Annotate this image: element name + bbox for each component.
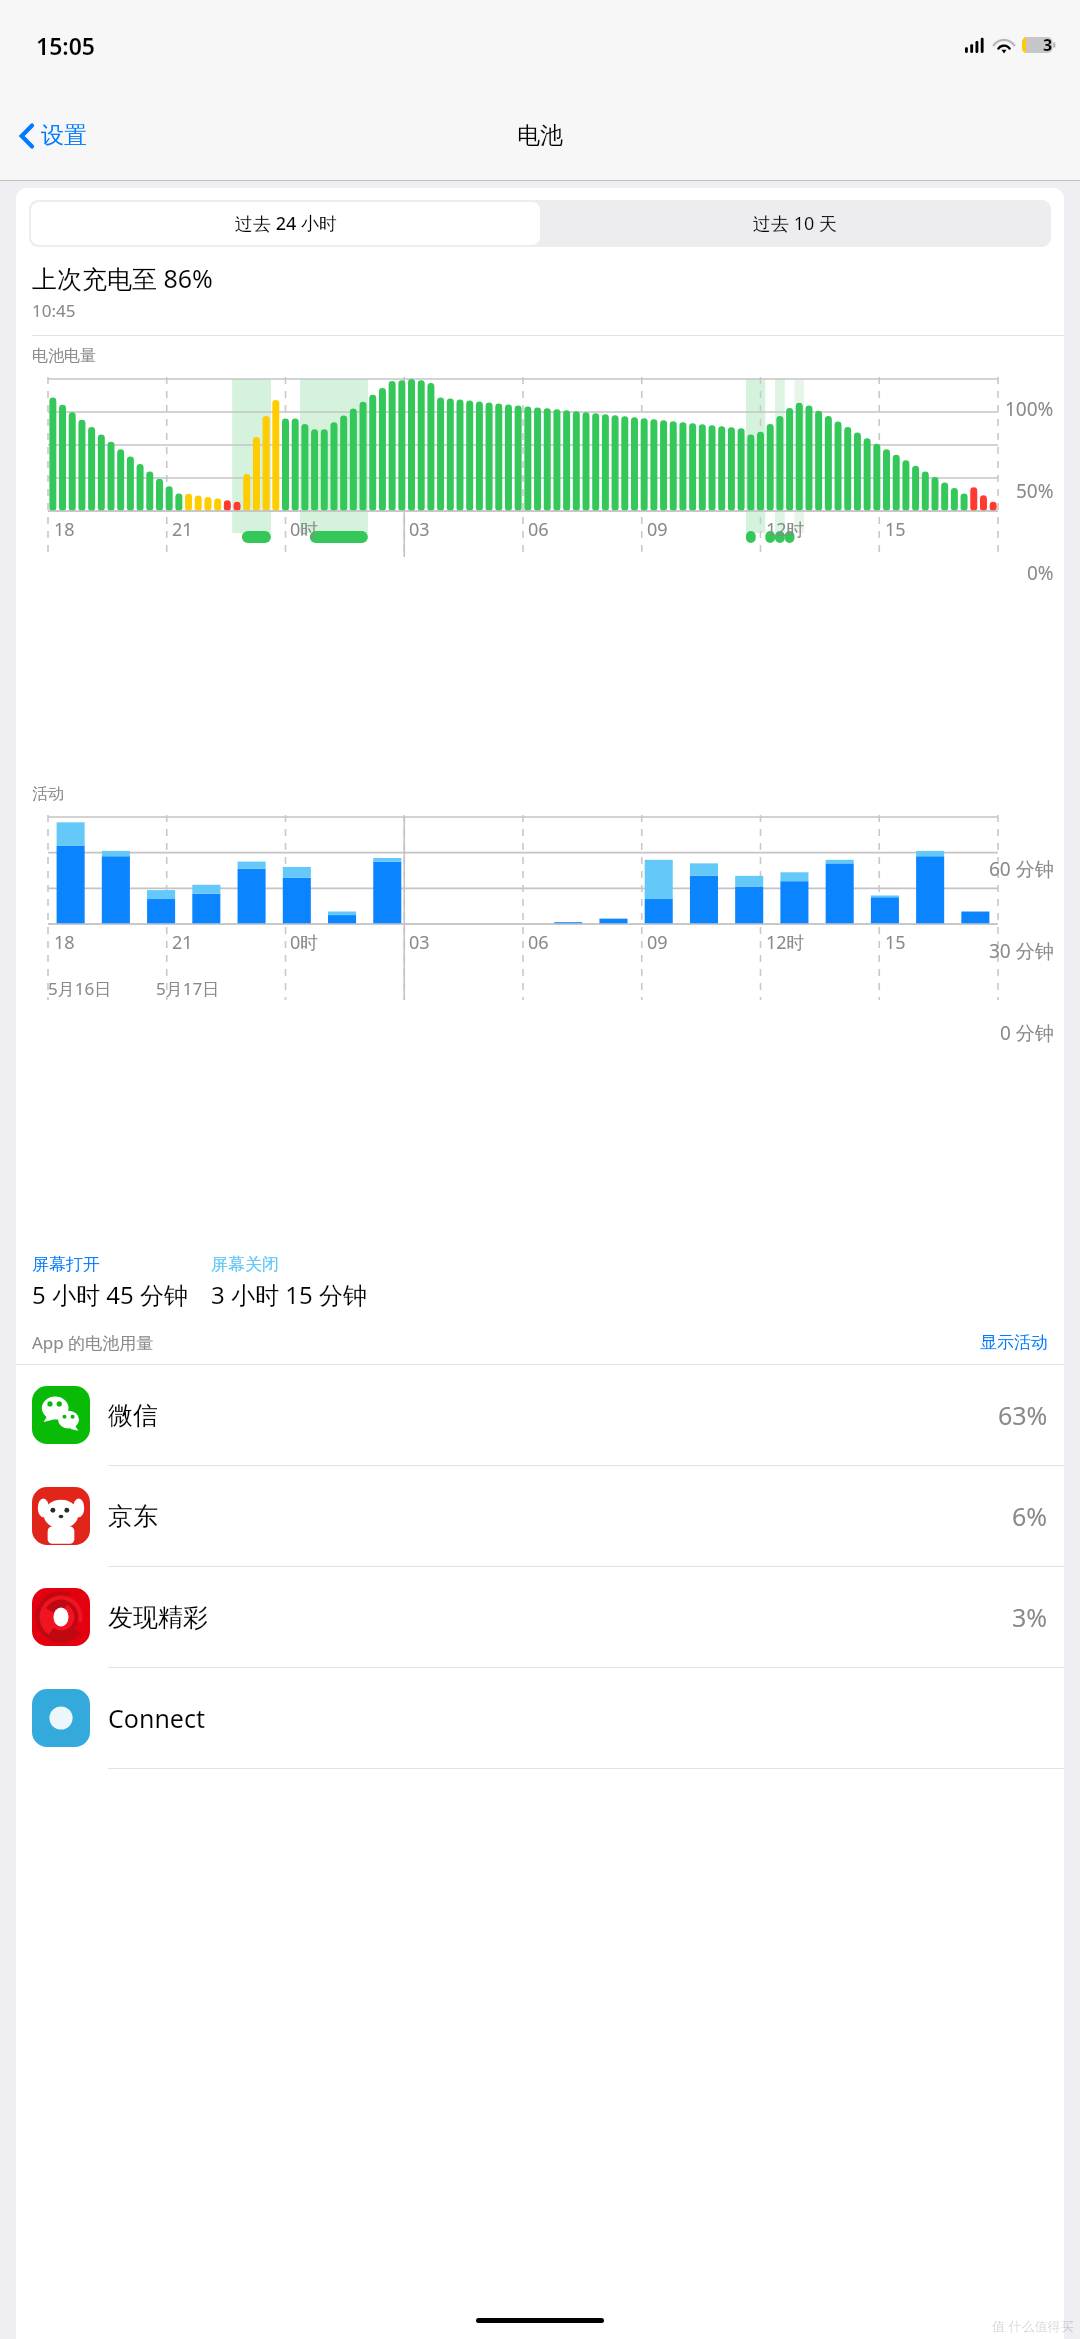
staticText: 15: [885, 517, 906, 542]
staticText: 0时: [290, 930, 319, 955]
staticText: 0 分钟: [1000, 1020, 1054, 1046]
staticText: 上次充电至 86%: [32, 261, 213, 295]
staticText: 5月16日: [48, 977, 112, 1000]
staticText: 3 小时 15 分钟: [211, 1278, 367, 1311]
button[interactable]: 微信: [16, 1365, 1064, 1466]
staticText: 15:05: [36, 30, 95, 61]
staticText: 6%: [1012, 1499, 1048, 1533]
staticText: 21: [172, 930, 193, 955]
staticText: 06: [528, 930, 549, 955]
staticText: 50%: [1016, 478, 1054, 504]
staticText: 3%: [1012, 1600, 1048, 1634]
staticText: 活动: [32, 784, 64, 804]
staticText: 12时: [766, 517, 805, 542]
staticText: 18: [54, 930, 75, 955]
staticText: 屏幕关闭: [211, 1254, 279, 1275]
button[interactable]: 过去 24 小时: [31, 202, 540, 245]
staticText: 5 小时 45 分钟: [32, 1278, 188, 1311]
button[interactable]: 设置: [14, 115, 93, 156]
staticText: 18: [54, 517, 75, 542]
staticText: 3: [1043, 34, 1053, 56]
staticText: 过去 24 小时: [235, 211, 337, 236]
staticText: 15: [885, 930, 906, 955]
staticText: 63%: [998, 1398, 1048, 1432]
staticText: 03: [409, 930, 430, 955]
staticText: 微信: [108, 1400, 158, 1431]
button[interactable]: 发现精彩: [16, 1567, 1064, 1668]
staticText: 发现精彩: [108, 1602, 208, 1633]
staticText: 0时: [290, 517, 319, 542]
staticText: 100%: [1005, 396, 1054, 422]
staticText: 过去 10 天: [753, 211, 837, 236]
staticText: 09: [647, 517, 668, 542]
button[interactable]: Connect: [16, 1668, 1064, 1769]
staticText: 10:45: [32, 299, 76, 322]
staticText: 5月17日: [156, 977, 220, 1000]
staticText: 09: [647, 930, 668, 955]
staticText: 屏幕打开: [32, 1254, 100, 1275]
staticText: 值 什么值得买: [992, 2317, 1074, 2335]
staticText: 03: [409, 517, 430, 542]
staticText: Connect: [108, 1701, 205, 1735]
staticText: 京东: [108, 1501, 158, 1532]
staticText: 12时: [766, 930, 805, 955]
button[interactable]: 京东: [16, 1466, 1064, 1567]
staticText: 电池电量: [32, 346, 96, 366]
staticText: App 的电池用量: [32, 1331, 154, 1354]
staticText: 0%: [1027, 560, 1054, 586]
button[interactable]: 过去 10 天: [540, 202, 1049, 245]
staticText: 30 分钟: [989, 938, 1054, 964]
staticText: 06: [528, 517, 549, 542]
staticText: 显示活动: [980, 1332, 1048, 1353]
staticText: 21: [172, 517, 193, 542]
button[interactable]: 显示活动: [980, 1332, 1048, 1353]
staticText: 60 分钟: [989, 856, 1054, 882]
staticText: 设置: [41, 121, 87, 150]
staticText: 电池: [517, 121, 563, 150]
